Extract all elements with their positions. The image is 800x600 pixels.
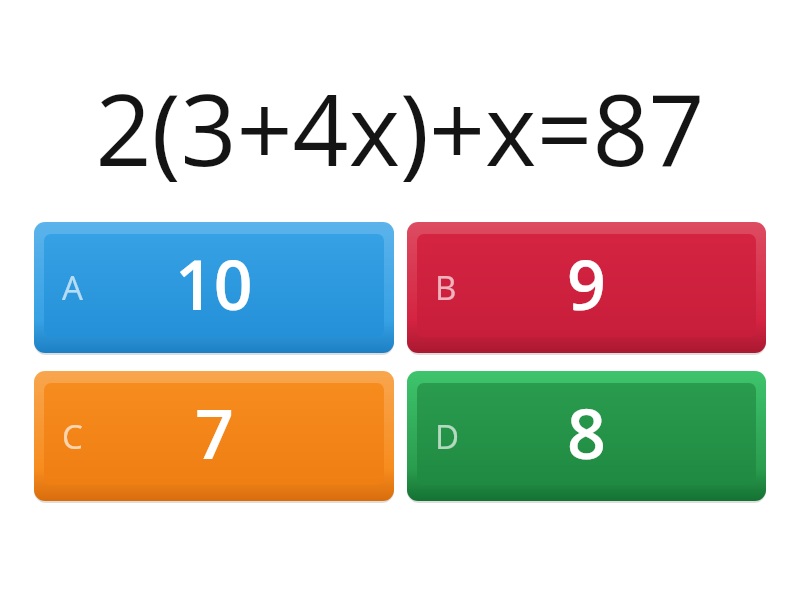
staticText: B	[435, 265, 457, 310]
staticText: 7	[195, 386, 234, 479]
staticText: 2(3+4x)+x=87	[0, 61, 800, 194]
button[interactable]: C	[34, 371, 394, 501]
staticText: C	[62, 414, 83, 459]
button[interactable]: D	[407, 371, 766, 501]
staticText: 9	[567, 237, 606, 330]
staticText: 10	[175, 237, 253, 330]
button[interactable]: A	[34, 222, 394, 353]
staticText: D	[435, 414, 460, 459]
button[interactable]: B	[407, 222, 766, 353]
staticText: A	[62, 265, 83, 310]
staticText: 8	[567, 386, 606, 479]
